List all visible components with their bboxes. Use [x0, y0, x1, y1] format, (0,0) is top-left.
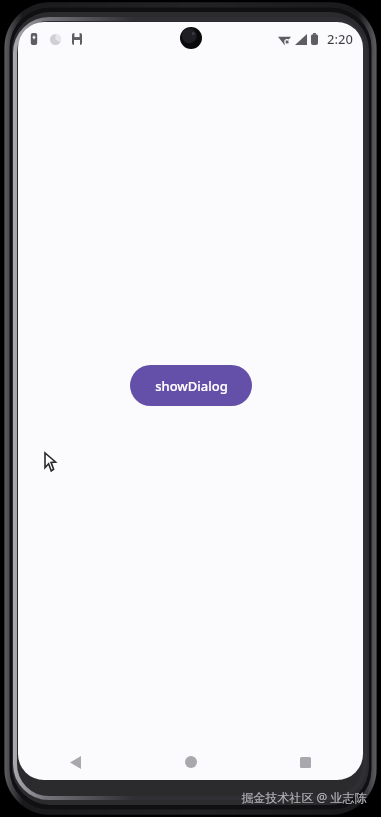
staticText: 掘金技术社区 @ 业志陈: [241, 789, 367, 805]
staticText: 2:20: [327, 30, 353, 48]
button[interactable]: Home: [133, 744, 248, 780]
button[interactable]: Recent apps: [248, 744, 363, 780]
button[interactable]: Back: [18, 744, 133, 780]
staticText: showDialog: [155, 377, 228, 395]
button[interactable]: showDialog: [130, 365, 252, 406]
